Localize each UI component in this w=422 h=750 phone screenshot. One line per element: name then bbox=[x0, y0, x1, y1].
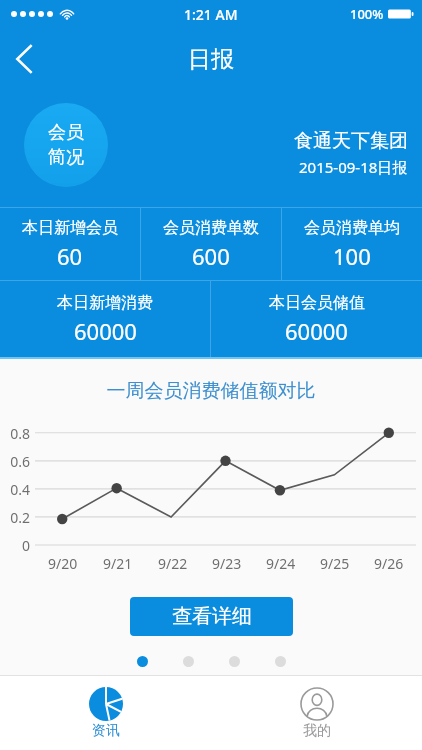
staticText: 60000 bbox=[74, 316, 137, 346]
staticText: 60000 bbox=[285, 316, 348, 346]
button[interactable]: 本日会员储值 bbox=[211, 281, 422, 357]
button[interactable]: 我的 bbox=[211, 676, 422, 750]
button[interactable]: 会员消费单均 bbox=[282, 208, 422, 280]
staticText: 60 bbox=[57, 241, 83, 271]
staticText: 9/21 bbox=[103, 554, 133, 573]
staticText: 查看详细 bbox=[172, 604, 252, 629]
staticText: 9/25 bbox=[320, 554, 350, 573]
button[interactable]: Page 2 bbox=[183, 656, 194, 667]
button[interactable]: Back bbox=[0, 35, 48, 83]
staticText: 600 bbox=[192, 241, 230, 271]
staticText: 资讯 bbox=[92, 722, 120, 740]
staticText: 1:21 AM bbox=[184, 5, 238, 24]
button[interactable]: 会员消费单数 bbox=[141, 208, 281, 280]
staticText: 0.2 bbox=[0, 508, 30, 527]
button[interactable]: Page 3 bbox=[229, 656, 240, 667]
staticText: 本日新增会员 bbox=[22, 218, 118, 238]
button[interactable]: 本日新增会员 bbox=[0, 208, 140, 280]
staticText: 会员消费单均 bbox=[304, 218, 400, 238]
button[interactable]: 查看详细 bbox=[130, 597, 293, 636]
staticText: 一周会员消费储值额对比 bbox=[0, 379, 422, 403]
staticText: 0 bbox=[0, 536, 30, 555]
staticText: 9/24 bbox=[266, 554, 296, 573]
staticText: 100 bbox=[333, 241, 371, 271]
staticText: 9/22 bbox=[158, 554, 188, 573]
staticText: 0.4 bbox=[0, 480, 30, 499]
staticText: 会员 bbox=[48, 121, 84, 144]
button[interactable]: Page 1 bbox=[137, 656, 148, 667]
button[interactable]: 资讯 bbox=[0, 676, 211, 750]
staticText: 9/26 bbox=[374, 554, 404, 573]
staticText: 100% bbox=[350, 5, 384, 23]
staticText: 日报 bbox=[188, 45, 234, 74]
button[interactable]: Page 4 bbox=[275, 656, 286, 667]
staticText: 0.8 bbox=[0, 424, 30, 443]
staticText: 我的 bbox=[303, 722, 331, 740]
staticText: 简况 bbox=[48, 146, 84, 169]
button[interactable]: 会员 bbox=[24, 103, 108, 187]
staticText: 0.6 bbox=[0, 452, 30, 471]
staticText: 会员消费单数 bbox=[163, 218, 259, 238]
staticText: 9/23 bbox=[212, 554, 242, 573]
staticText: 9/20 bbox=[48, 554, 78, 573]
staticText: 食通天下集团 bbox=[294, 129, 408, 153]
staticText: 本日新增消费 bbox=[57, 293, 153, 313]
staticText: 2015-09-18日报 bbox=[299, 157, 408, 177]
button[interactable]: 本日新增消费 bbox=[0, 281, 210, 357]
staticText: 本日会员储值 bbox=[269, 293, 365, 313]
